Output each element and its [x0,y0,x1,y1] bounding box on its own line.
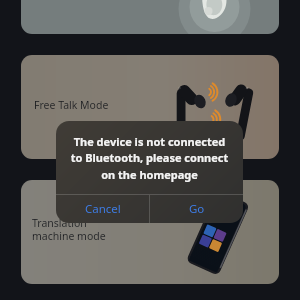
button[interactable]: Cancel [56,195,149,223]
button[interactable] [21,0,279,34]
staticText: Go [189,201,205,217]
staticText: Free Talk Mode [34,98,109,112]
staticText: Translation machine mode [32,216,106,243]
staticText: The device is not connected to Bluetooth… [56,134,243,183]
button[interactable]: Translation machine mode [21,180,279,284]
staticText: Cancel [85,201,121,217]
button[interactable]: Free Talk Mode [21,55,279,159]
button[interactable]: Go [150,195,243,223]
